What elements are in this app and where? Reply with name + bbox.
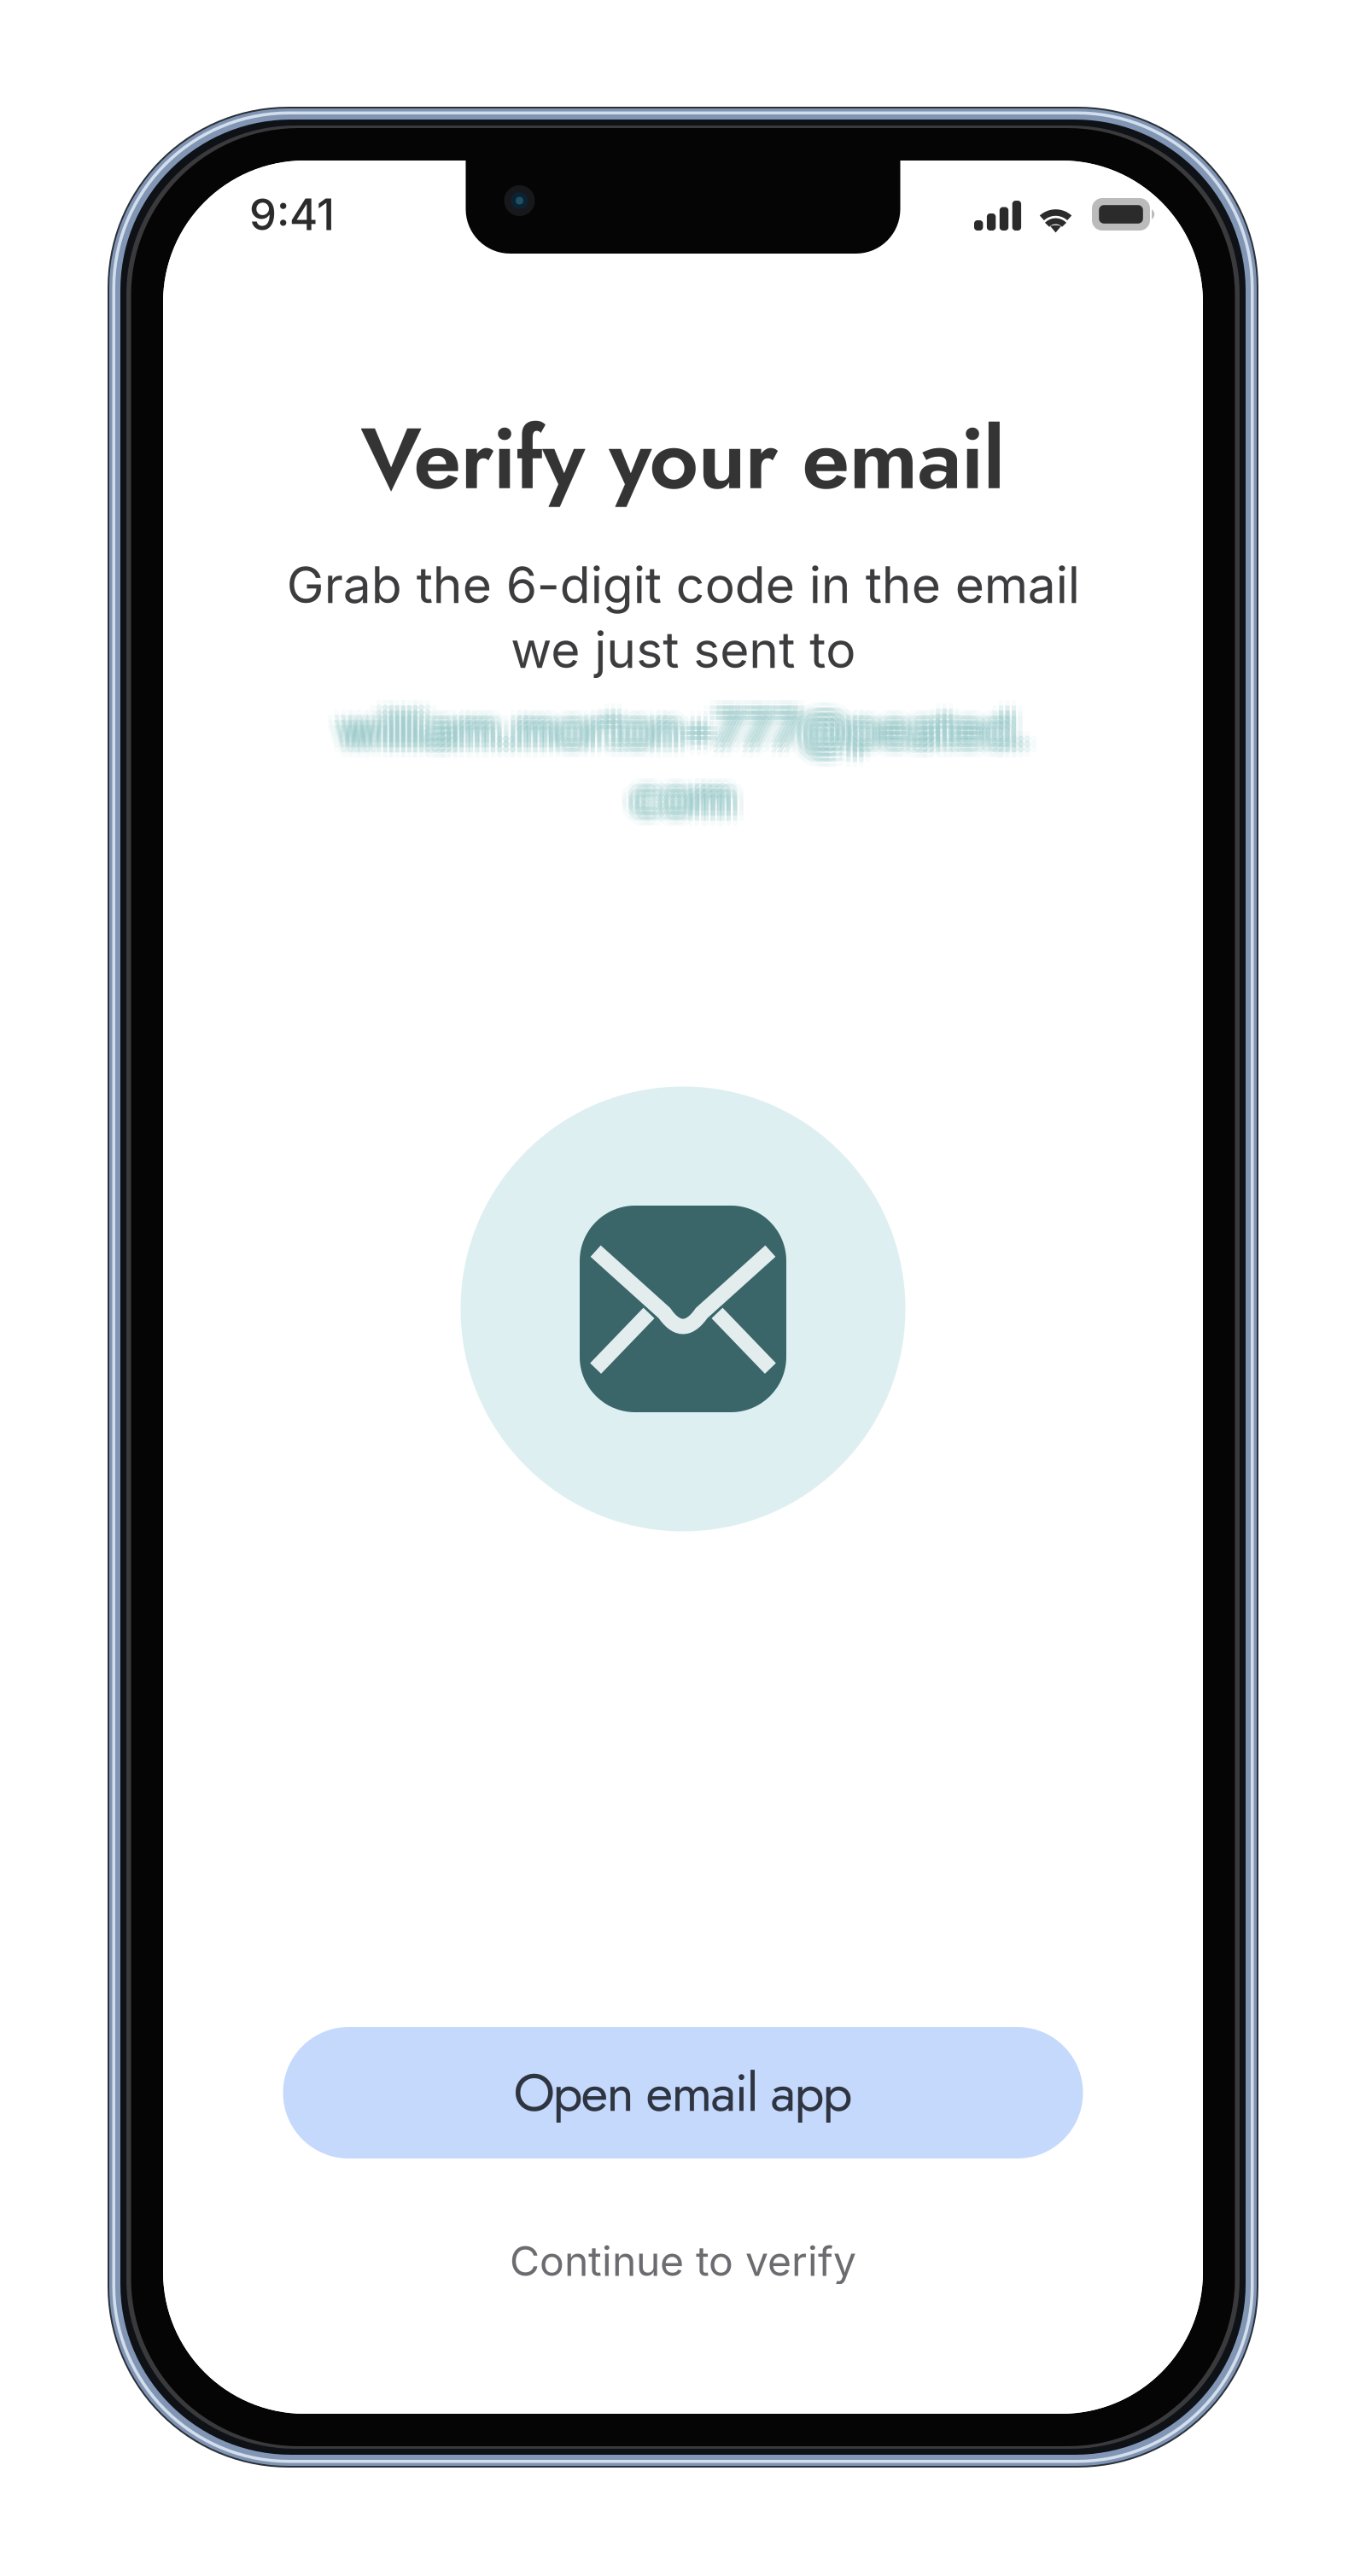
staticText: Open email app	[514, 2055, 852, 2131]
staticText: william.morton+777@peated. com	[332, 689, 1022, 818]
staticText: william.morton+777@peated. com	[338, 689, 1028, 818]
staticText: william.morton+777@peated. com	[344, 694, 1034, 823]
staticText: Continue to verify	[510, 2236, 856, 2286]
staticText: william.morton+777@peated. com	[344, 709, 1034, 838]
staticText: william.morton+777@peated. com	[344, 689, 1034, 818]
staticText: william.morton+777@peated. com	[332, 694, 1022, 823]
staticText: william.morton+777@peated. com	[338, 704, 1028, 833]
staticText: william.morton+777@peated. com	[332, 709, 1022, 838]
button[interactable]: Continue to verify	[418, 2225, 948, 2297]
staticText: william.morton+777@peated. com	[332, 699, 1022, 828]
staticText: william.morton+777@peated. com	[344, 699, 1034, 828]
button[interactable]: Open email app	[283, 2027, 1083, 2158]
staticText: Verify your email	[361, 397, 1005, 520]
staticText: william.morton+777@peated. com	[338, 699, 1028, 828]
staticText: Grab the 6-digit code in the email we ju…	[286, 555, 1080, 680]
staticText: william.morton+777@peated. com	[325, 699, 1015, 828]
staticText: william.morton+777@peated. com	[325, 694, 1015, 823]
staticText: william.morton+777@peated. com	[344, 704, 1034, 833]
staticText: 9:41	[249, 188, 335, 240]
staticText: william.morton+777@peated. com	[338, 709, 1028, 838]
staticText: william.morton+777@peated. com	[351, 694, 1041, 823]
staticText: william.morton+777@peated. com	[338, 694, 1028, 823]
staticText: william.morton+777@peated. com	[325, 704, 1015, 833]
staticText: william.morton+777@peated. com	[332, 704, 1022, 833]
staticText: william.morton+777@peated. com	[351, 704, 1041, 833]
staticText: william.morton+777@peated. com	[351, 699, 1041, 828]
